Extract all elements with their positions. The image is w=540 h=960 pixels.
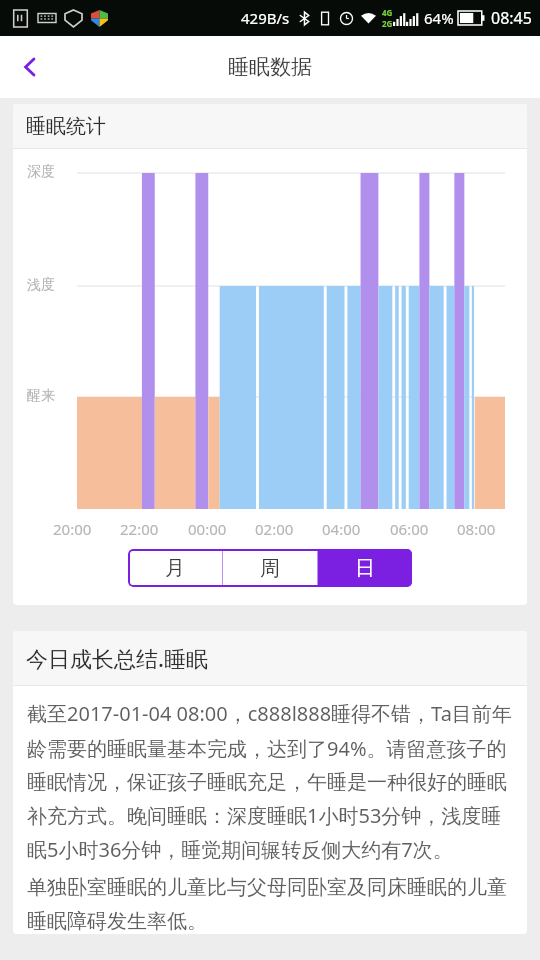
staticText: 2G	[382, 18, 393, 29]
staticText: 08:00	[457, 519, 496, 539]
button[interactable]: Back	[6, 43, 54, 91]
staticText: 02:00	[255, 519, 294, 539]
staticText: 深度	[27, 163, 55, 181]
staticText: 4G	[382, 7, 393, 18]
staticText: 06:00	[390, 519, 429, 539]
staticText: 64%	[424, 8, 454, 28]
staticText: 周	[260, 556, 280, 581]
staticText: 日	[355, 556, 375, 581]
staticText: 00:00	[188, 519, 227, 539]
staticText: 22:00	[120, 519, 159, 539]
staticText: 单独卧室睡眠的儿童比与父母同卧室及同床睡眠的儿童睡眠障碍发生率低。	[27, 875, 517, 934]
staticText: 今日成长总结.睡眠	[26, 643, 208, 673]
button[interactable]: 日	[318, 549, 412, 587]
staticText: 浅度	[27, 276, 55, 294]
staticText: 截至2017-01-04 08:00，c888l888睡得不错，Ta目前年龄需要…	[27, 700, 517, 863]
button[interactable]: 周	[223, 549, 317, 587]
staticText: 睡眠统计	[26, 114, 106, 139]
staticText: 20:00	[53, 519, 92, 539]
staticText: 醒来	[27, 387, 55, 405]
button[interactable]: 月	[128, 549, 222, 587]
staticText: 睡眠数据	[228, 54, 312, 80]
staticText: 429B/s	[241, 8, 290, 28]
staticText: 04:00	[322, 519, 361, 539]
staticText: 月	[165, 556, 185, 581]
staticText: 08:45	[491, 7, 532, 29]
